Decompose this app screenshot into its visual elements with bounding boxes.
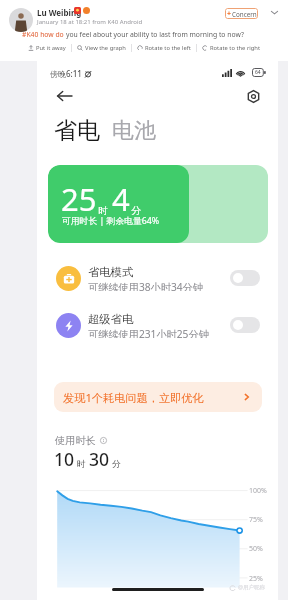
staticText: 省电模式 [88,265,134,279]
button[interactable]: 省电 [54,116,100,145]
staticText: 75% [249,515,263,525]
button[interactable]: 超级省电 [37,312,278,338]
staticText: January 18 at 18:21 from K40 Android [37,18,143,26]
staticText: Rotate to the right [210,44,261,52]
staticText: 30 [89,447,110,471]
button[interactable]: 省电模式 [230,270,260,286]
staticText: 超级省电 [88,312,134,326]
staticText: you feel about your ability to last from… [66,30,244,39]
staticText: 发现1个耗电问题，立即优化 [63,390,204,405]
button[interactable]: + [225,8,258,19]
staticText: 时 [98,205,108,217]
staticText: 25% [249,574,263,584]
staticText: 可用时长 | 剩余电量64% [62,215,160,227]
staticText: 50% [249,544,263,554]
button[interactable]: 超级省电 [230,317,260,333]
staticText: + [227,9,232,19]
button[interactable]: Back [52,84,76,108]
button[interactable]: View the graph [72,44,131,52]
staticText: #K40 how do [22,30,66,39]
button[interactable]: Settings [241,84,265,108]
staticText: 分 [112,459,121,470]
staticText: Put it away [36,44,66,52]
button[interactable]: 发现1个耗电问题，立即优化 [54,382,262,412]
button[interactable]: Put it away [23,44,71,52]
staticText: 25 [61,178,97,220]
staticText: 10 [54,447,75,471]
staticText: 傍晚6:11 [50,68,82,79]
button[interactable]: 省电模式 [37,265,278,291]
staticText: 可继续使用38小时34分钟 [88,280,203,291]
staticText: View the graph [85,44,126,52]
staticText: 使用时长 [55,434,96,447]
button[interactable]: Rotate to the right [197,44,266,52]
staticText: Rotate to the left [145,44,191,52]
staticText: 4 [112,178,130,220]
button[interactable]: 电池 [112,117,156,145]
staticText: 分 [131,205,141,217]
staticText: 可继续使用231小时25分钟 [88,327,209,338]
staticText: 100% [249,486,267,496]
staticText: @用户昵称 [238,583,265,591]
staticText: 省电 [54,116,100,145]
staticText: Lu Weibing [37,7,82,18]
button[interactable]: 25 [48,165,268,243]
staticText: 时 [77,459,86,470]
staticText: Concern [232,10,257,19]
staticText: 64 [255,69,261,76]
button[interactable]: Rotate to the left [132,44,196,52]
staticText: 电池 [112,117,156,145]
button[interactable]: Expand [269,7,280,18]
